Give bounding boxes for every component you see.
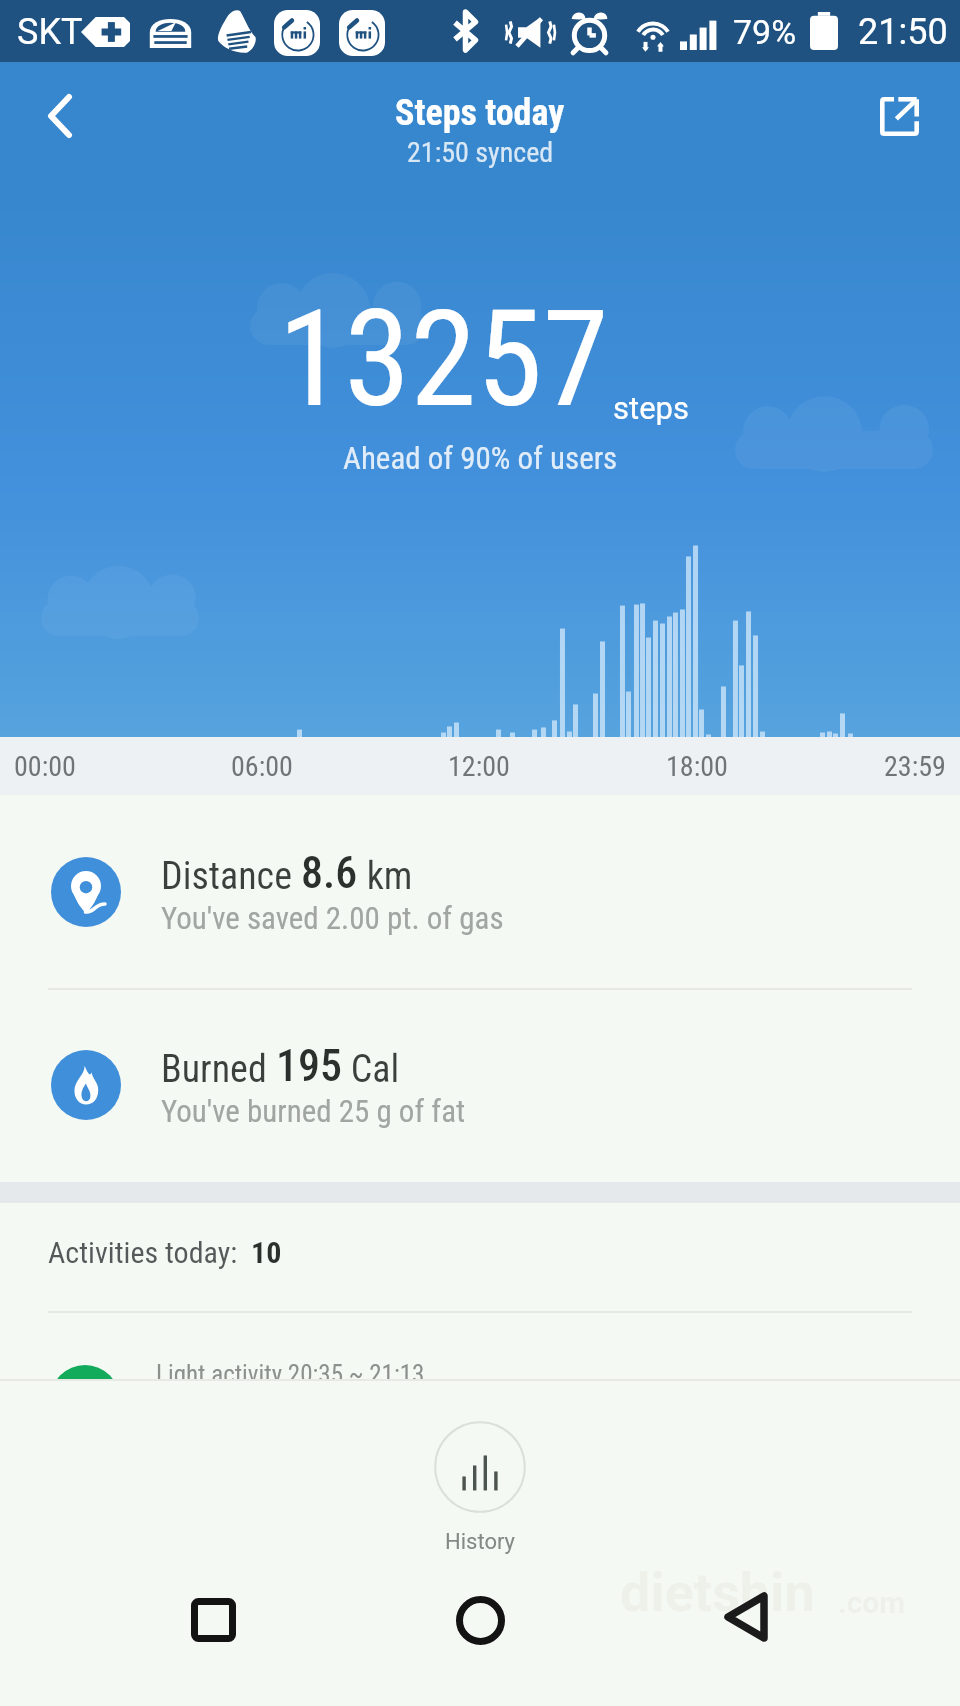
button[interactable]: Share [864,81,934,151]
staticText: 23:59 [884,750,946,783]
staticText: Ahead of 90% of users [343,440,618,476]
staticText: 06:00 [231,750,293,783]
button[interactable]: Burned [0,988,960,1181]
staticText: Activities today: [48,1235,251,1270]
staticText: Light activity 20:35 ~ 21:13 [156,1360,425,1389]
staticText: steps [613,390,689,426]
staticText: Cal [342,1047,400,1092]
staticText: 79% [733,12,797,52]
staticText: 10 [251,1235,282,1270]
staticText: 195 [276,1040,342,1092]
staticText: 21:50 synced [407,136,554,169]
staticText: 13257 [278,281,609,438]
staticText: Distance [161,854,301,899]
staticText: 21:50 [858,11,948,53]
staticText: Steps today [395,92,565,134]
button[interactable]: Home [440,1580,520,1660]
staticText: History [445,1529,515,1555]
staticText: .com [838,1585,906,1620]
button[interactable]: Activities today: [0,1203,960,1379]
staticText: You've saved 2.00 pt. of gas [161,900,504,936]
staticText: km [358,854,413,899]
staticText: dietshin [620,1561,815,1624]
button[interactable]: Back [25,81,95,151]
staticText: You've burned 25 g of fat [161,1093,466,1129]
staticText: 12:00 [448,750,510,783]
button[interactable]: Recent apps [173,1580,253,1660]
staticText: 18:00 [666,750,728,783]
staticText: SKT [17,11,83,53]
button[interactable]: History [434,1421,526,1555]
staticText: 8.6 [301,847,358,899]
button[interactable]: Back [706,1577,786,1657]
button[interactable]: Distance [0,795,960,988]
staticText: 00:00 [14,750,76,783]
staticText: Burned [161,1047,276,1092]
